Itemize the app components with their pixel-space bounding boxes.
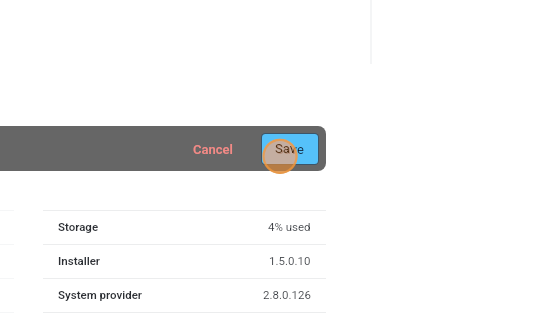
staticText: 2.8.0.126 xyxy=(263,288,311,301)
staticText: 4% used xyxy=(268,220,311,233)
staticText: System provider xyxy=(58,288,142,301)
staticText: Storage xyxy=(58,220,99,233)
staticText: Save xyxy=(275,141,297,156)
button[interactable]: Save xyxy=(262,134,318,164)
button[interactable]: System provider xyxy=(43,278,326,312)
staticText: Installer xyxy=(58,254,100,267)
button[interactable]: Cancel xyxy=(183,131,243,167)
button[interactable]: Installer xyxy=(43,244,326,278)
staticText: 1.5.0.10 xyxy=(269,254,311,267)
button[interactable]: Storage xyxy=(43,210,326,244)
staticText: Save xyxy=(276,142,304,157)
staticText: Cancel xyxy=(193,142,233,157)
